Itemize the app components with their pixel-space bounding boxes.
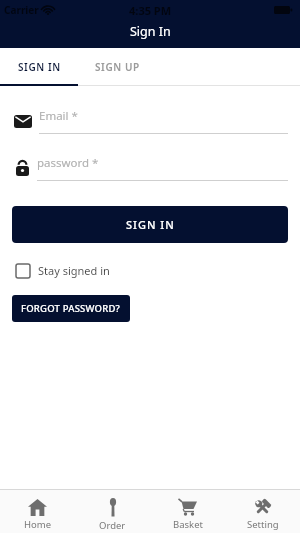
staticText: Carrier [4, 3, 39, 17]
staticText: Order [99, 519, 126, 532]
staticText: Basket [173, 518, 203, 531]
button[interactable]: Home [0, 490, 75, 533]
staticText: password * [37, 155, 99, 171]
button[interactable]: SIGN IN [0, 48, 78, 86]
staticText: Home [24, 518, 52, 531]
staticText: 4:35 PM [129, 3, 172, 18]
button[interactable]: Order [75, 490, 150, 533]
button[interactable]: SIGN UP [78, 48, 156, 86]
button[interactable]: Setting [225, 490, 300, 533]
button[interactable]: Stay signed in [12, 263, 110, 278]
button[interactable]: Basket [150, 490, 225, 533]
staticText: SIGN IN [18, 60, 61, 74]
staticText: Email * [39, 108, 78, 124]
staticText: Stay signed in [38, 263, 110, 278]
button[interactable]: FORGOT PASSWORD? [12, 295, 130, 322]
staticText: SIGN IN [126, 217, 175, 232]
staticText: FORGOT PASSWORD? [21, 302, 121, 315]
staticText: Sign In [130, 23, 171, 40]
button[interactable]: SIGN IN [12, 206, 288, 243]
staticText: Setting [247, 518, 279, 531]
staticText: SIGN UP [95, 60, 140, 74]
